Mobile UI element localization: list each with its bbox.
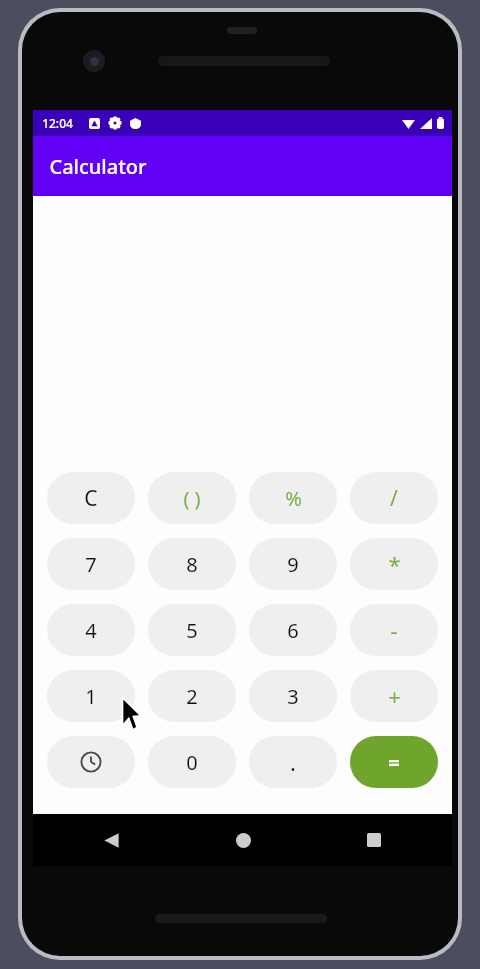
button[interactable]: Home (223, 820, 263, 860)
button[interactable]: / (350, 472, 438, 524)
button[interactable]: = (350, 736, 438, 788)
button[interactable]: 9 (249, 538, 337, 590)
staticText: . (290, 747, 296, 777)
button[interactable]: % (249, 472, 337, 524)
staticText: 2 (186, 683, 198, 710)
staticText: 6 (287, 617, 299, 644)
staticText: ( ) (183, 485, 201, 512)
button[interactable]: 1 (47, 670, 135, 722)
button[interactable]: 8 (148, 538, 236, 590)
staticText: + (388, 681, 401, 711)
button[interactable]: 3 (249, 670, 337, 722)
button[interactable]: 2 (148, 670, 236, 722)
staticText: = (388, 749, 400, 776)
staticText: 1 (85, 683, 97, 710)
staticText: 3 (287, 683, 299, 710)
button[interactable]: Recents (354, 820, 394, 860)
button[interactable]: 6 (249, 604, 337, 656)
button[interactable]: 5 (148, 604, 236, 656)
staticText: * (388, 549, 401, 579)
staticText: C (84, 484, 98, 513)
button[interactable]: . (249, 736, 337, 788)
staticText: / (390, 484, 398, 513)
staticText: 8 (186, 551, 198, 578)
staticText: Calculator (49, 153, 147, 180)
button[interactable]: - (350, 604, 438, 656)
button[interactable]: * (350, 538, 438, 590)
button[interactable]: ( ) (148, 472, 236, 524)
button[interactable]: 4 (47, 604, 135, 656)
staticText: 12:04 (42, 115, 73, 131)
button[interactable]: 0 (148, 736, 236, 788)
staticText: 4 (85, 617, 97, 644)
button[interactable]: C (47, 472, 135, 524)
staticText: 5 (186, 617, 198, 644)
button[interactable]: History (47, 736, 135, 788)
button[interactable]: Back (91, 820, 131, 860)
staticText: % (285, 485, 302, 512)
staticText: 7 (85, 551, 97, 578)
staticText: 9 (287, 551, 299, 578)
staticText: 0 (186, 749, 198, 776)
button[interactable]: 7 (47, 538, 135, 590)
staticText: - (390, 615, 398, 645)
button[interactable]: + (350, 670, 438, 722)
